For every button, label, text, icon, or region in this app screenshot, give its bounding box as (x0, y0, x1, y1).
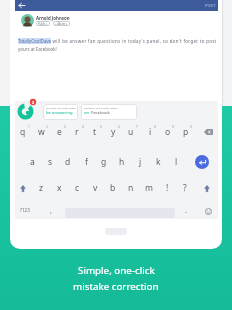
staticText: mistake correction (73, 280, 159, 293)
button[interactable]: r (69, 125, 85, 139)
staticText: e (57, 126, 62, 138)
button[interactable]: , (43, 204, 59, 218)
button[interactable]: p (178, 125, 194, 139)
button[interactable]: CHANGE THE VERB FORM (43, 104, 78, 120)
button[interactable]: l (168, 155, 184, 169)
staticText: z (39, 182, 43, 194)
button[interactable]: t (87, 125, 103, 139)
button[interactable]: x (51, 181, 67, 195)
staticText: m (145, 182, 153, 194)
staticText: 3 (64, 125, 66, 129)
staticText: ! (166, 182, 169, 194)
button[interactable]: e (51, 125, 67, 139)
staticText: w (38, 126, 45, 138)
button[interactable] (201, 126, 216, 138)
button[interactable]: m (141, 181, 157, 195)
button[interactable]: s (42, 155, 58, 169)
button[interactable] (195, 155, 209, 169)
button[interactable]: 2 (16, 99, 41, 125)
staticText: u (128, 126, 134, 138)
button[interactable]: Public ▾ (38, 21, 48, 26)
staticText: c (75, 182, 80, 194)
button[interactable]: g (96, 155, 112, 169)
button[interactable]: c (69, 181, 85, 195)
staticText: a (30, 156, 35, 168)
button[interactable]: ?123 (16, 204, 34, 216)
button[interactable]: . (178, 204, 194, 218)
button[interactable]: + Album ▾ (55, 21, 68, 26)
button[interactable]: ? (177, 181, 193, 195)
staticText: Facebook (91, 110, 110, 116)
staticText: o (165, 126, 171, 138)
staticText: q (20, 126, 26, 138)
staticText: 0 (190, 125, 192, 129)
button[interactable]: q (15, 125, 31, 139)
staticText: b (110, 182, 116, 194)
button[interactable]: ! (159, 181, 175, 195)
button[interactable]: k (150, 155, 166, 169)
staticText: l (175, 156, 178, 168)
staticText: d (65, 156, 71, 168)
button[interactable]: i (142, 125, 158, 139)
staticText: k (156, 156, 161, 168)
button[interactable]: y (105, 125, 121, 139)
staticText: p (183, 126, 189, 138)
button[interactable]: v (87, 181, 103, 195)
staticText: + Album ▾ (55, 22, 68, 26)
staticText: y (111, 126, 116, 138)
button[interactable]: b (105, 181, 121, 195)
staticText: i (149, 126, 152, 138)
staticText: yours at Facebook! (18, 46, 57, 52)
staticText: 9 (172, 125, 174, 129)
staticText: 2 (46, 125, 48, 129)
button[interactable]: f (78, 155, 94, 169)
staticText: POSSIBLY CONFUSED WORD (84, 106, 118, 109)
staticText: POST (205, 3, 216, 9)
staticText: s (48, 156, 53, 168)
button[interactable]: POST (205, 3, 216, 9)
button[interactable]: n (123, 181, 139, 195)
staticText: r (75, 126, 79, 138)
staticText: ?123 (20, 207, 30, 213)
staticText: v (93, 182, 98, 194)
staticText: ? (183, 182, 187, 194)
staticText: be answering (46, 110, 73, 116)
button[interactable]: u (123, 125, 139, 139)
staticText: x (57, 182, 62, 194)
button[interactable]: w (33, 125, 49, 139)
staticText: 1 (28, 125, 30, 129)
staticText: Public ▾ (38, 22, 48, 26)
button[interactable] (17, 0, 27, 11)
staticText: , (50, 206, 52, 216)
staticText: g (101, 156, 107, 168)
button[interactable]: POSSIBLY CONFUSED WORD (81, 104, 137, 120)
staticText: Arnold Johnson (36, 15, 70, 21)
staticText: 5 (100, 125, 102, 129)
staticText: . (185, 206, 187, 216)
button[interactable]: h (114, 155, 130, 169)
button[interactable]: d (60, 155, 76, 169)
staticText: 8 (154, 125, 156, 129)
button[interactable] (200, 182, 214, 195)
staticText: 2 (32, 100, 35, 105)
staticText: 6 (118, 125, 120, 129)
button[interactable]: j (132, 155, 148, 169)
staticText: j (139, 156, 142, 168)
button[interactable]: z (33, 181, 49, 195)
staticText: on (84, 110, 91, 116)
staticText: TotallyCoolDave (18, 38, 51, 44)
staticText: t (93, 126, 97, 138)
button[interactable]: a (24, 155, 40, 169)
staticText: 4 (82, 125, 84, 129)
staticText: h (119, 156, 125, 168)
staticText: Simple, one-click (78, 264, 155, 277)
button[interactable]: o (160, 125, 176, 139)
staticText: f (85, 156, 88, 168)
staticText: CHANGE THE VERB FORM (46, 106, 76, 109)
button[interactable] (201, 205, 215, 218)
staticText: will be answer fan questions in today's … (51, 38, 217, 44)
button[interactable] (16, 182, 30, 195)
staticText: n (128, 182, 134, 194)
